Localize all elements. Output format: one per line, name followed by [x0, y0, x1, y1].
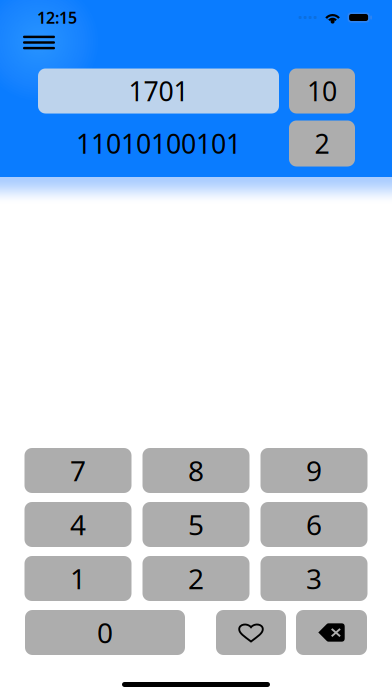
staticText: 4: [70, 506, 86, 543]
button[interactable]: 4: [24, 502, 131, 547]
staticText: 11010100101: [76, 126, 241, 161]
staticText: 1: [70, 560, 86, 597]
button[interactable]: 1: [24, 556, 131, 601]
button[interactable]: 2: [142, 556, 249, 601]
staticText: 10: [307, 73, 337, 109]
button[interactable]: 3: [260, 556, 367, 601]
staticText: 2: [314, 126, 329, 161]
button[interactable]: 9: [260, 448, 367, 493]
button[interactable]: 2: [289, 120, 355, 166]
staticText: 12:15: [37, 7, 77, 28]
button[interactable]: 5: [142, 502, 249, 547]
button[interactable]: Delete: [296, 610, 367, 655]
staticText: 2: [188, 560, 204, 597]
staticText: 5: [188, 506, 204, 543]
staticText: 1701: [128, 73, 188, 109]
staticText: 9: [306, 452, 322, 489]
button[interactable]: 0: [25, 610, 185, 655]
button[interactable]: 7: [24, 448, 131, 493]
button[interactable]: Menu: [23, 35, 55, 49]
staticText: 7: [70, 452, 86, 489]
staticText: 8: [188, 452, 204, 489]
staticText: 6: [306, 506, 322, 543]
button[interactable]: 8: [142, 448, 249, 493]
button[interactable]: 6: [260, 502, 367, 547]
staticText: 3: [306, 560, 322, 597]
staticText: 0: [97, 614, 113, 651]
button[interactable]: Favorite: [216, 610, 286, 655]
button[interactable]: 10: [289, 68, 355, 113]
